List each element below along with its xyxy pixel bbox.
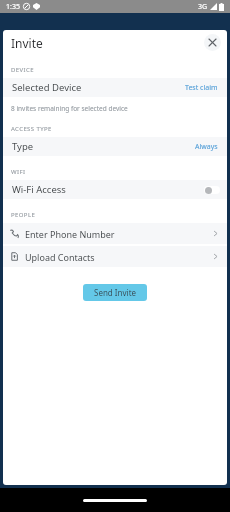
button[interactable]: Send Invite bbox=[83, 284, 147, 301]
staticText: Selected Device bbox=[12, 81, 82, 94]
button[interactable]: Wi-Fi Access bbox=[12, 180, 220, 199]
staticText: WIFI bbox=[11, 168, 26, 176]
staticText: Invite bbox=[11, 35, 43, 51]
staticText: Type bbox=[12, 140, 34, 153]
staticText: Wi-Fi Access bbox=[12, 183, 66, 196]
staticText: Send Invite bbox=[94, 287, 137, 298]
staticText: 1:35 bbox=[6, 2, 20, 12]
staticText: ACCESS TYPE bbox=[11, 125, 52, 133]
staticText: 3G bbox=[198, 2, 208, 12]
staticText: Upload Contacts bbox=[25, 251, 95, 263]
staticText: 8 invites remaining for selected device bbox=[11, 104, 128, 113]
button[interactable]: Enter Phone Number bbox=[10, 223, 219, 244]
button[interactable]: Type bbox=[12, 137, 218, 156]
button[interactable]: Close bbox=[204, 34, 221, 51]
staticText: Test claim bbox=[185, 83, 218, 93]
staticText: DEVICE bbox=[11, 66, 34, 74]
button[interactable]: Selected Device bbox=[12, 78, 218, 97]
button[interactable]: Upload Contacts bbox=[10, 246, 219, 267]
staticText: Always bbox=[195, 142, 218, 152]
staticText: Enter Phone Number bbox=[25, 228, 115, 240]
staticText: PEOPLE bbox=[11, 211, 36, 219]
